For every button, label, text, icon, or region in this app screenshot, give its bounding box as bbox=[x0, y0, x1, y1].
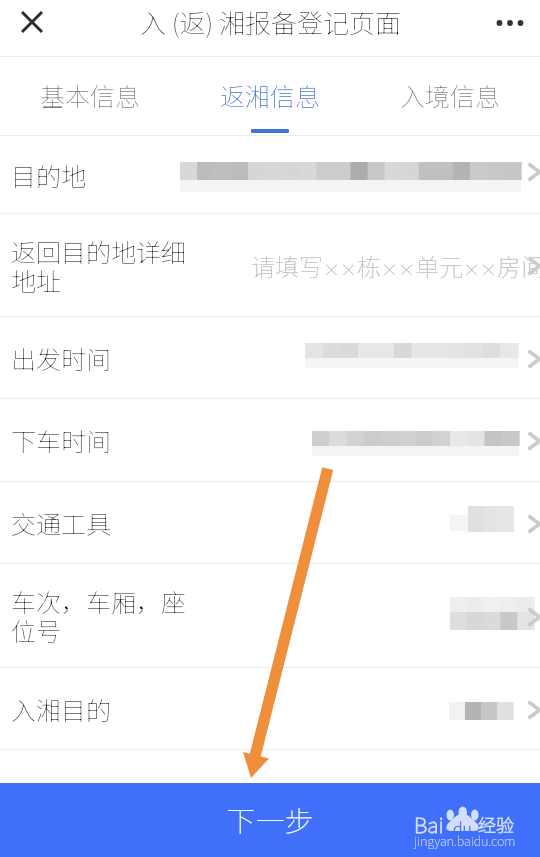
button[interactable]: 返湘信息 bbox=[180, 57, 360, 135]
button[interactable]: 入境信息 bbox=[360, 57, 540, 135]
staticText: 经验 bbox=[478, 811, 514, 837]
staticText: du bbox=[453, 816, 472, 839]
staticText: 返湘信息 bbox=[220, 77, 321, 113]
button[interactable]: 出发时间 bbox=[0, 317, 540, 399]
button[interactable]: Close bbox=[13, 3, 51, 41]
button[interactable]: 基本信息 bbox=[0, 57, 180, 135]
button[interactable]: 下一步 bbox=[0, 783, 540, 857]
staticText: 目的地 bbox=[11, 157, 87, 193]
button[interactable]: 下车时间 bbox=[0, 399, 540, 482]
button[interactable]: 车次，车厢，座位号 bbox=[0, 564, 540, 668]
staticText: 请填写××栋××单元××房间 bbox=[251, 248, 540, 283]
button[interactable]: 返回目的地详细地址 bbox=[0, 214, 540, 317]
button[interactable]: 交通工具 bbox=[0, 482, 540, 564]
staticText: 交通工具 bbox=[11, 505, 112, 541]
button[interactable]: More options bbox=[488, 1, 532, 45]
button[interactable]: 入湘目的 bbox=[0, 668, 540, 750]
button[interactable]: 目的地 bbox=[0, 136, 540, 214]
staticText: Bai bbox=[414, 809, 444, 839]
staticText: 下车时间 bbox=[11, 422, 112, 458]
staticText: 出发时间 bbox=[11, 340, 112, 376]
staticText: 入境信息 bbox=[400, 77, 501, 113]
staticText: 返回目的地详细地址 bbox=[11, 233, 198, 298]
staticText: 基本信息 bbox=[40, 77, 141, 113]
staticText: 车次，车厢，座位号 bbox=[11, 583, 198, 648]
staticText: jingyan.baidu.com bbox=[414, 831, 516, 849]
staticText: 下一步 bbox=[226, 798, 314, 840]
staticText: 入湘目的 bbox=[11, 691, 112, 727]
staticText: 入 (返) 湘报备登记页面 bbox=[140, 3, 401, 41]
